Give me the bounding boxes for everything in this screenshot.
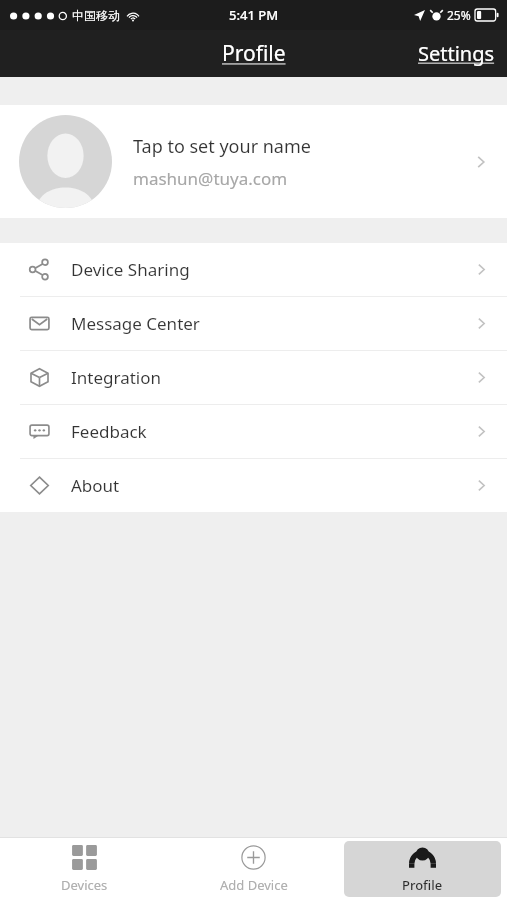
staticText: Device Sharing (71, 258, 472, 281)
button[interactable]: Profile (212, 35, 296, 72)
staticText: mashun@tuya.com (133, 167, 288, 190)
button[interactable]: About (0, 459, 507, 512)
staticText: Feedback (71, 420, 472, 443)
staticText: Message Center (71, 312, 472, 335)
button[interactable]: Add Device (175, 841, 332, 897)
staticText: Profile (402, 876, 443, 894)
staticText: Profile (222, 39, 286, 68)
staticText: 中国移动 (72, 8, 120, 23)
button[interactable]: Profile (344, 841, 501, 897)
button[interactable]: Message Center (0, 297, 507, 350)
staticText: About (71, 474, 472, 497)
button[interactable]: Device Sharing (0, 243, 507, 296)
button[interactable]: Devices (6, 841, 163, 897)
staticText: Settings (418, 40, 495, 67)
button[interactable]: Integration (0, 351, 507, 404)
button[interactable]: Tap to set your name (0, 105, 507, 218)
button[interactable]: Feedback (0, 405, 507, 458)
staticText: 5:41 PM (229, 6, 279, 24)
staticText: Add Device (220, 876, 288, 894)
staticText: Integration (71, 366, 472, 389)
button[interactable]: Settings (408, 36, 507, 71)
staticText: Devices (61, 876, 108, 894)
staticText: 25% (447, 7, 471, 23)
staticText: Tap to set your name (133, 134, 311, 159)
